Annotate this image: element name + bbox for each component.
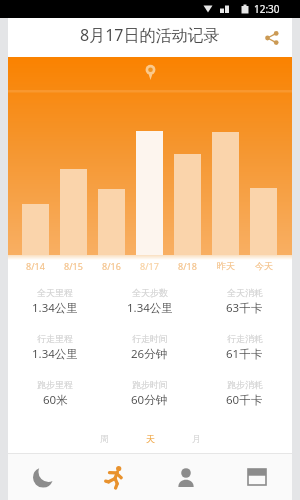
staticText: 全天里程: [37, 287, 73, 298]
button[interactable]: 8/16: [98, 259, 125, 272]
button[interactable]: 跑步时间: [102, 379, 197, 411]
button[interactable]: 8/15: [60, 259, 87, 272]
button[interactable]: Profile: [150, 454, 221, 500]
staticText: 周: [100, 433, 109, 444]
button[interactable]: 8/17: [136, 259, 163, 272]
staticText: 8/14: [26, 260, 45, 272]
staticText: 61千卡: [226, 346, 263, 362]
staticText: 行走消耗: [227, 333, 263, 344]
button[interactable]: 行走里程: [8, 333, 102, 365]
button[interactable]: 全天步数: [102, 287, 197, 319]
staticText: 行走里程: [37, 333, 73, 344]
button[interactable]: 周: [81, 424, 127, 452]
staticText: 月: [192, 433, 201, 444]
button[interactable]: 行走时间: [102, 333, 197, 365]
button[interactable]: 全天消耗: [197, 287, 292, 319]
staticText: 60米: [43, 392, 68, 408]
staticText: 今天: [255, 260, 273, 271]
staticText: 跑步消耗: [227, 379, 263, 390]
button[interactable]: 跑步消耗: [197, 379, 292, 411]
button[interactable]: 行走消耗: [197, 333, 292, 365]
button[interactable]: Share: [260, 26, 284, 50]
button[interactable]: 全天里程: [8, 287, 102, 319]
button[interactable]: 跑步里程: [8, 379, 102, 411]
staticText: 行走时间: [132, 333, 168, 344]
staticText: 8月17日的活动记录: [80, 24, 220, 46]
staticText: 8/16: [102, 260, 121, 272]
staticText: 全天步数: [132, 287, 168, 298]
staticText: 60千卡: [226, 392, 263, 408]
staticText: 1.34公里: [32, 346, 78, 362]
staticText: 60分钟: [131, 392, 168, 408]
staticText: 26分钟: [131, 346, 168, 362]
button[interactable]: 8/18: [174, 259, 201, 272]
button[interactable]: Sleep: [8, 454, 79, 500]
staticText: 天: [146, 433, 155, 444]
staticText: 全天消耗: [227, 287, 263, 298]
staticText: 1.34公里: [32, 300, 78, 316]
staticText: 8/18: [178, 260, 197, 272]
button[interactable]: Activity: [79, 454, 150, 500]
button[interactable]: 天: [127, 424, 173, 452]
staticText: 12:30: [254, 2, 280, 16]
button[interactable]: 今天: [250, 259, 277, 272]
staticText: 8/17: [140, 260, 159, 272]
staticText: 1.34公里: [127, 300, 173, 316]
staticText: 8/15: [64, 260, 83, 272]
staticText: 跑步时间: [132, 379, 168, 390]
staticText: 63千卡: [226, 300, 263, 316]
button[interactable]: Browser: [221, 454, 292, 500]
button[interactable]: 月: [173, 424, 219, 452]
button[interactable]: 昨天: [212, 259, 239, 272]
button[interactable]: 8/14: [22, 259, 49, 272]
staticText: 跑步里程: [37, 379, 73, 390]
staticText: 昨天: [217, 260, 235, 271]
